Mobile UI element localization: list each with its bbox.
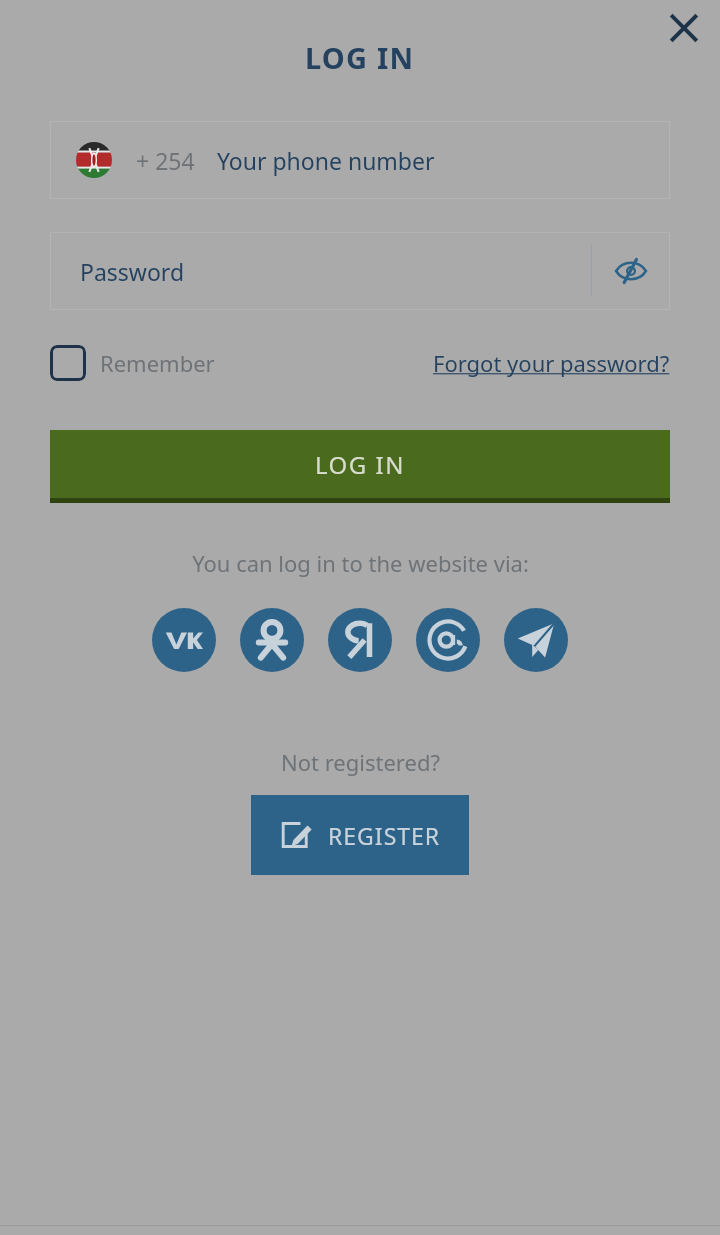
staticText: Your phone number [217,145,435,176]
staticText: Not registered? [281,747,440,777]
staticText: You can log in to the website via: [192,548,529,578]
button[interactable]: Remember [50,345,215,381]
button[interactable]: Yandex [328,608,392,672]
button[interactable]: VK [152,608,216,672]
staticText: LOG IN [305,38,415,77]
staticText: LOG IN [315,448,405,481]
button[interactable]: Forgot your password? [433,348,670,378]
staticText: Forgot your password? [433,348,670,378]
button[interactable]: REGISTER [251,795,469,875]
button[interactable]: Telegram [504,608,568,672]
button[interactable]: + 254 [50,121,670,199]
button[interactable]: Odnoklassniki [240,608,304,672]
staticText: Password [80,256,185,287]
button[interactable]: Close [656,0,712,56]
button[interactable]: Show password [592,232,670,310]
staticText: Remember [100,348,215,378]
button[interactable]: Mail.ru [416,608,480,672]
button[interactable]: LOG IN [50,430,670,503]
staticText: + 254 [136,145,195,176]
staticText: REGISTER [328,820,441,851]
